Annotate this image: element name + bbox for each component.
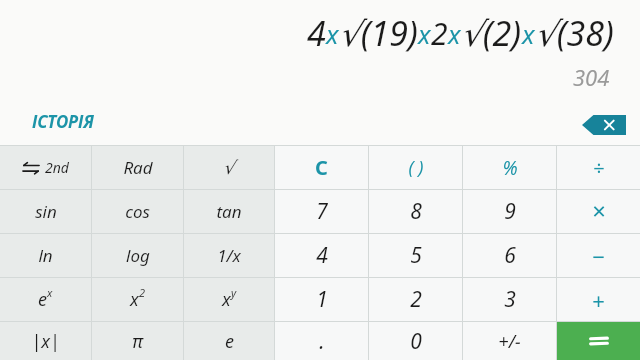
staticText: x: [47, 285, 53, 300]
button[interactable]: +: [557, 278, 640, 321]
button[interactable]: 1/x: [184, 234, 274, 277]
staticText: 6: [504, 241, 516, 270]
button[interactable]: ln: [0, 234, 91, 277]
staticText: 1: [316, 285, 328, 314]
button[interactable]: 2nd: [0, 146, 91, 189]
button[interactable]: tan: [184, 190, 274, 233]
staticText: 5: [410, 241, 422, 270]
staticText: 8: [410, 197, 422, 226]
staticText: tan: [216, 200, 242, 223]
staticText: 1/x: [217, 244, 241, 267]
button[interactable]: e: [0, 278, 91, 321]
button[interactable]: √: [184, 146, 274, 189]
staticText: y: [231, 285, 237, 300]
staticText: +/−: [498, 329, 521, 354]
staticText: cos: [125, 200, 150, 223]
button[interactable]: 0: [369, 322, 462, 360]
button[interactable]: Rad: [92, 146, 183, 189]
button[interactable]: ✕: [557, 190, 640, 233]
button[interactable]: 1: [275, 278, 368, 321]
staticText: %: [502, 155, 518, 181]
staticText: 2: [410, 285, 422, 314]
button[interactable]: π: [92, 322, 183, 360]
staticText: ( ): [408, 155, 424, 180]
button[interactable]: ÷: [557, 146, 640, 189]
button[interactable]: |x|: [0, 322, 91, 360]
button[interactable]: %: [463, 146, 556, 189]
staticText: ✕: [591, 201, 607, 222]
button[interactable]: 2: [369, 278, 462, 321]
button[interactable]: 4: [275, 234, 368, 277]
staticText: √(38): [535, 10, 614, 56]
button[interactable]: 8: [369, 190, 462, 233]
staticText: log: [126, 244, 150, 267]
staticText: 0: [410, 327, 422, 356]
staticText: x: [326, 16, 339, 51]
staticText: e: [225, 329, 234, 354]
button[interactable]: 5: [369, 234, 462, 277]
button[interactable]: x: [92, 278, 183, 321]
staticText: x: [222, 287, 231, 312]
button[interactable]: x: [184, 278, 274, 321]
button[interactable]: C: [275, 146, 368, 189]
button[interactable]: Backspace: [582, 115, 626, 135]
button[interactable]: .: [275, 322, 368, 360]
staticText: e: [38, 287, 47, 312]
staticText: x: [522, 16, 535, 51]
staticText: 2: [431, 13, 448, 54]
staticText: √(19): [339, 10, 418, 56]
button[interactable]: cos: [92, 190, 183, 233]
staticText: ln: [38, 244, 53, 267]
button[interactable]: ІСТОРІЯ: [32, 110, 94, 133]
button[interactable]: ( ): [369, 146, 462, 189]
staticText: 4: [316, 241, 328, 270]
button[interactable]: −: [557, 234, 640, 277]
staticText: 304: [573, 62, 610, 92]
button[interactable]: sin: [0, 190, 91, 233]
staticText: √(2): [461, 10, 522, 56]
staticText: sin: [35, 200, 57, 223]
staticText: 4: [307, 10, 326, 56]
button[interactable]: +/−: [463, 322, 556, 360]
staticText: √: [223, 157, 235, 178]
button[interactable]: 9: [463, 190, 556, 233]
button[interactable]: Equals: [557, 322, 640, 360]
staticText: ÷: [593, 154, 605, 181]
staticText: x: [130, 287, 139, 312]
button[interactable]: 6: [463, 234, 556, 277]
staticText: x: [448, 16, 461, 51]
staticText: C: [315, 154, 328, 181]
staticText: −: [592, 241, 605, 271]
staticText: x: [418, 16, 431, 51]
button[interactable]: e: [184, 322, 274, 360]
staticText: π: [132, 329, 143, 354]
staticText: 7: [316, 197, 328, 226]
staticText: +: [592, 285, 605, 315]
button[interactable]: 3: [463, 278, 556, 321]
staticText: 2: [139, 285, 146, 300]
staticText: 2nd: [45, 158, 69, 177]
staticText: |x|: [31, 329, 60, 354]
staticText: Rad: [123, 156, 153, 179]
staticText: 3: [504, 285, 516, 314]
staticText: .: [319, 327, 325, 356]
button[interactable]: 7: [275, 190, 368, 233]
button[interactable]: log: [92, 234, 183, 277]
staticText: 9: [504, 197, 516, 226]
